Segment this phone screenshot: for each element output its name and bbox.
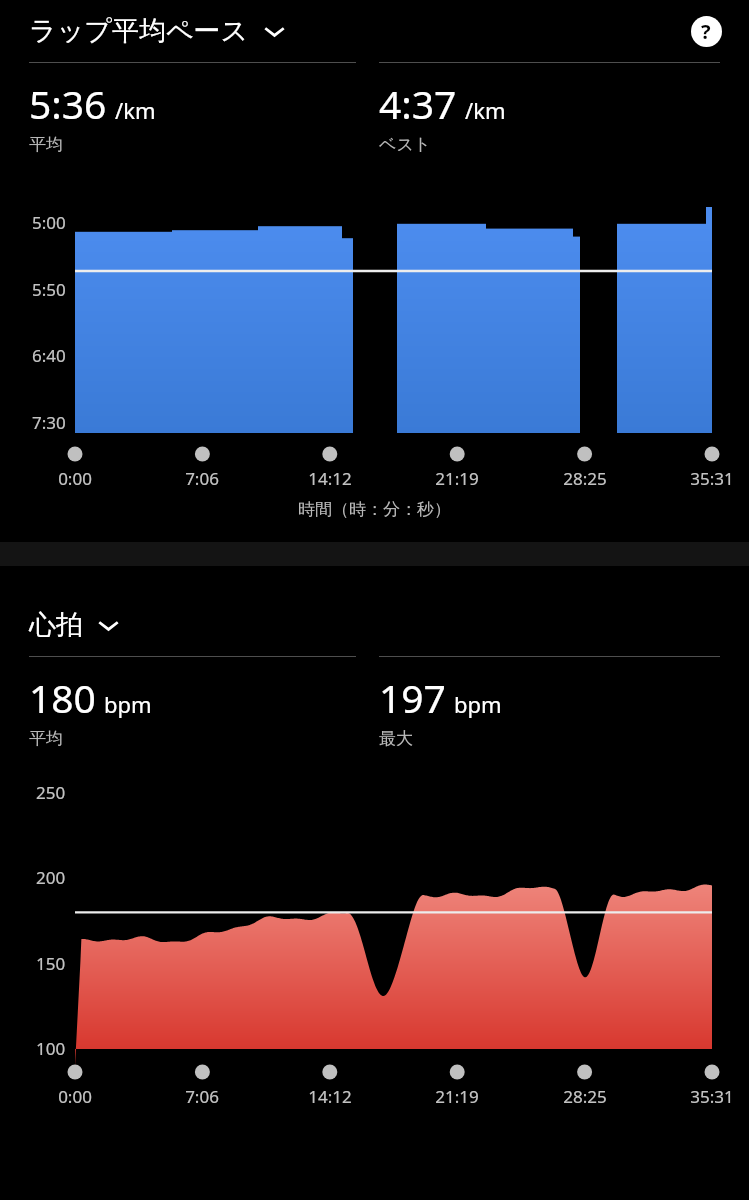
staticText: ? [701,18,711,45]
staticText: 7:06 [185,467,219,490]
staticText: 28:25 [563,1085,607,1108]
staticText: 最大 [379,728,413,749]
staticText: /km [465,95,506,125]
staticText: 平均 [29,134,63,155]
staticText: 21:19 [435,467,479,490]
staticText: 35:31 [690,1085,734,1108]
staticText: bpm [454,689,502,719]
staticText: 5:50 [32,278,66,301]
button[interactable]: 4:37 [379,62,720,155]
staticText: 平均 [29,728,63,749]
staticText: ベスト [379,134,432,155]
staticText: 0:00 [58,1085,92,1108]
staticText: 200 [36,866,66,889]
button[interactable]: 197 [379,656,720,749]
staticText: 6:40 [32,344,66,367]
button[interactable]: 180 [29,656,356,749]
button[interactable]: ヘルプ [688,13,724,49]
button[interactable]: ラップ平均ペース [29,14,285,48]
button[interactable]: 5:36 [29,62,356,155]
staticText: 21:19 [435,1085,479,1108]
staticText: bpm [104,689,152,719]
staticText: 100 [36,1037,66,1060]
button[interactable]: 心拍 [29,608,119,642]
staticText: 150 [36,952,66,975]
staticText: /km [115,95,156,125]
staticText: 4:37 [379,77,457,130]
staticText: 35:31 [690,467,734,490]
staticText: 14:12 [308,467,352,490]
staticText: 197 [379,671,446,724]
staticText: 7:30 [32,411,66,434]
staticText: 0:00 [58,467,92,490]
staticText: 時間（時：分：秒） [0,499,749,520]
staticText: 250 [36,781,66,804]
staticText: 5:00 [32,211,66,234]
staticText: 14:12 [308,1085,352,1108]
staticText: 28:25 [563,467,607,490]
staticText: 7:06 [185,1085,219,1108]
staticText: ラップ平均ペース [29,14,249,48]
staticText: 心拍 [29,608,83,642]
staticText: 5:36 [29,77,107,130]
staticText: 180 [29,671,96,724]
